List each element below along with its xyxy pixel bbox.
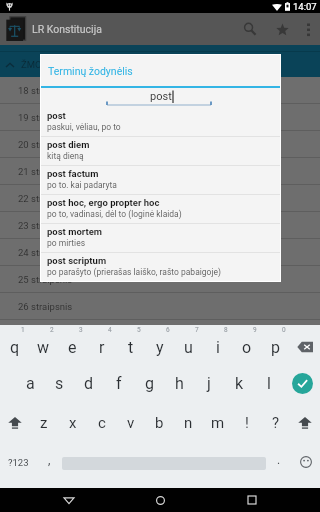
- staticText: 5: [137, 326, 141, 334]
- staticText: post diem: [47, 139, 90, 150]
- button[interactable]: 2: [29, 325, 58, 364]
- button[interactable]: 0: [261, 325, 290, 364]
- button[interactable]: c: [87, 403, 116, 442]
- staticText: j: [207, 374, 211, 393]
- button[interactable]: h: [164, 364, 194, 403]
- button[interactable]: 25 straipsnis: [0, 266, 320, 293]
- staticText: n: [184, 414, 193, 432]
- staticText: 23 straipsnis: [18, 220, 73, 231]
- button[interactable]: Back: [46, 488, 92, 512]
- staticText: t: [128, 338, 134, 357]
- staticText: m: [211, 414, 225, 432]
- staticText: 25 straipsnis: [18, 274, 73, 285]
- staticText: l: [267, 374, 271, 393]
- button[interactable]: Shift: [0, 403, 30, 442]
- staticText: 18 straipsnis: [18, 85, 73, 96]
- staticText: a: [26, 374, 35, 393]
- button[interactable]: 23 straipsnis: [0, 212, 320, 239]
- button[interactable]: Shift: [290, 403, 320, 442]
- staticText: h: [175, 374, 184, 393]
- button[interactable]: x: [58, 403, 87, 442]
- button[interactable]: n: [174, 403, 203, 442]
- staticText: kitą dieną: [47, 151, 84, 161]
- button[interactable]: ,: [36, 442, 62, 488]
- button[interactable]: m: [203, 403, 232, 442]
- staticText: z: [40, 414, 48, 432]
- button[interactable]: 22 straipsnis: [0, 185, 320, 212]
- staticText: v: [127, 414, 135, 432]
- button[interactable]: z: [30, 403, 58, 442]
- staticText: po parašyto (prierašas laiško, rašto pab…: [47, 267, 221, 277]
- staticText: i: [216, 338, 220, 357]
- staticText: 0: [282, 326, 286, 334]
- button[interactable]: post scriptum: [41, 253, 280, 281]
- staticText: !: [245, 414, 249, 432]
- staticText: y: [156, 338, 164, 357]
- button[interactable]: !: [232, 403, 261, 442]
- button[interactable]: post diem: [41, 137, 280, 165]
- button[interactable]: Favorite: [266, 13, 299, 45]
- staticText: 2: [50, 326, 54, 334]
- button[interactable]: s: [45, 364, 74, 403]
- button[interactable]: post: [41, 108, 280, 136]
- button[interactable]: 27 straipsnis: [0, 320, 320, 347]
- button[interactable]: 26 straipsnis: [0, 293, 320, 320]
- button[interactable]: j: [194, 364, 224, 403]
- button[interactable]: 21 straipsnis: [0, 158, 320, 185]
- button[interactable]: 7: [174, 325, 203, 364]
- button[interactable]: l: [254, 364, 284, 403]
- button[interactable]: f: [104, 364, 134, 403]
- button[interactable]: Recents: [229, 488, 275, 512]
- button[interactable]: 20 straipsnis: [0, 131, 320, 158]
- button[interactable]: d: [74, 364, 104, 403]
- staticText: Terminų žodynėlis: [48, 65, 133, 77]
- button[interactable]: .: [266, 442, 292, 488]
- button[interactable]: 4: [87, 325, 116, 364]
- button[interactable]: 9: [232, 325, 261, 364]
- button[interactable]: 1: [0, 325, 29, 364]
- staticText: 8: [224, 326, 228, 334]
- staticText: o: [242, 338, 252, 357]
- button[interactable]: 19 straipsnis: [0, 104, 320, 131]
- button[interactable]: Home: [137, 488, 183, 512]
- button[interactable]: More options: [299, 13, 318, 45]
- button[interactable]: v: [116, 403, 145, 442]
- button[interactable]: 24 straipsnis: [0, 239, 320, 266]
- button[interactable]: k: [224, 364, 254, 403]
- button[interactable]: b: [145, 403, 174, 442]
- staticText: 6: [166, 326, 170, 334]
- button[interactable]: 5: [116, 325, 145, 364]
- staticText: 1: [21, 326, 25, 334]
- staticText: post mortem: [47, 226, 103, 237]
- button[interactable]: 8: [203, 325, 232, 364]
- button[interactable]: ŽMOGUS IR VALSTYBĖ: [0, 52, 320, 77]
- button[interactable]: 6: [145, 325, 174, 364]
- staticText: ?: [272, 414, 280, 432]
- staticText: b: [155, 414, 164, 432]
- staticText: post scriptum: [47, 255, 107, 266]
- button[interactable]: Done: [284, 364, 320, 403]
- button[interactable]: 18 straipsnis: [0, 77, 320, 104]
- button[interactable]: Backspace: [290, 325, 320, 364]
- button[interactable]: post hoc, ergo propter hoc: [41, 195, 280, 223]
- button[interactable]: a: [16, 364, 45, 403]
- staticText: k: [235, 374, 244, 393]
- button[interactable]: Emoji: [292, 442, 320, 488]
- staticText: paskui, vėliau, po to: [47, 122, 121, 132]
- staticText: ,: [48, 453, 51, 467]
- staticText: post hoc, ergo propter hoc: [47, 197, 160, 208]
- staticText: u: [184, 338, 193, 357]
- staticText: post factum: [47, 168, 99, 179]
- button[interactable]: g: [134, 364, 164, 403]
- button[interactable]: post mortem: [41, 224, 280, 252]
- button[interactable]: post factum: [41, 166, 280, 194]
- button[interactable]: Search: [233, 13, 266, 45]
- button[interactable]: ?123: [0, 442, 36, 488]
- button[interactable]: ?: [261, 403, 290, 442]
- button[interactable]: 3: [58, 325, 87, 364]
- staticText: ŽMOGUS IR VALSTYBĖ: [21, 59, 119, 70]
- staticText: x: [69, 414, 77, 432]
- staticText: 3: [79, 326, 83, 334]
- staticText: e: [68, 338, 77, 357]
